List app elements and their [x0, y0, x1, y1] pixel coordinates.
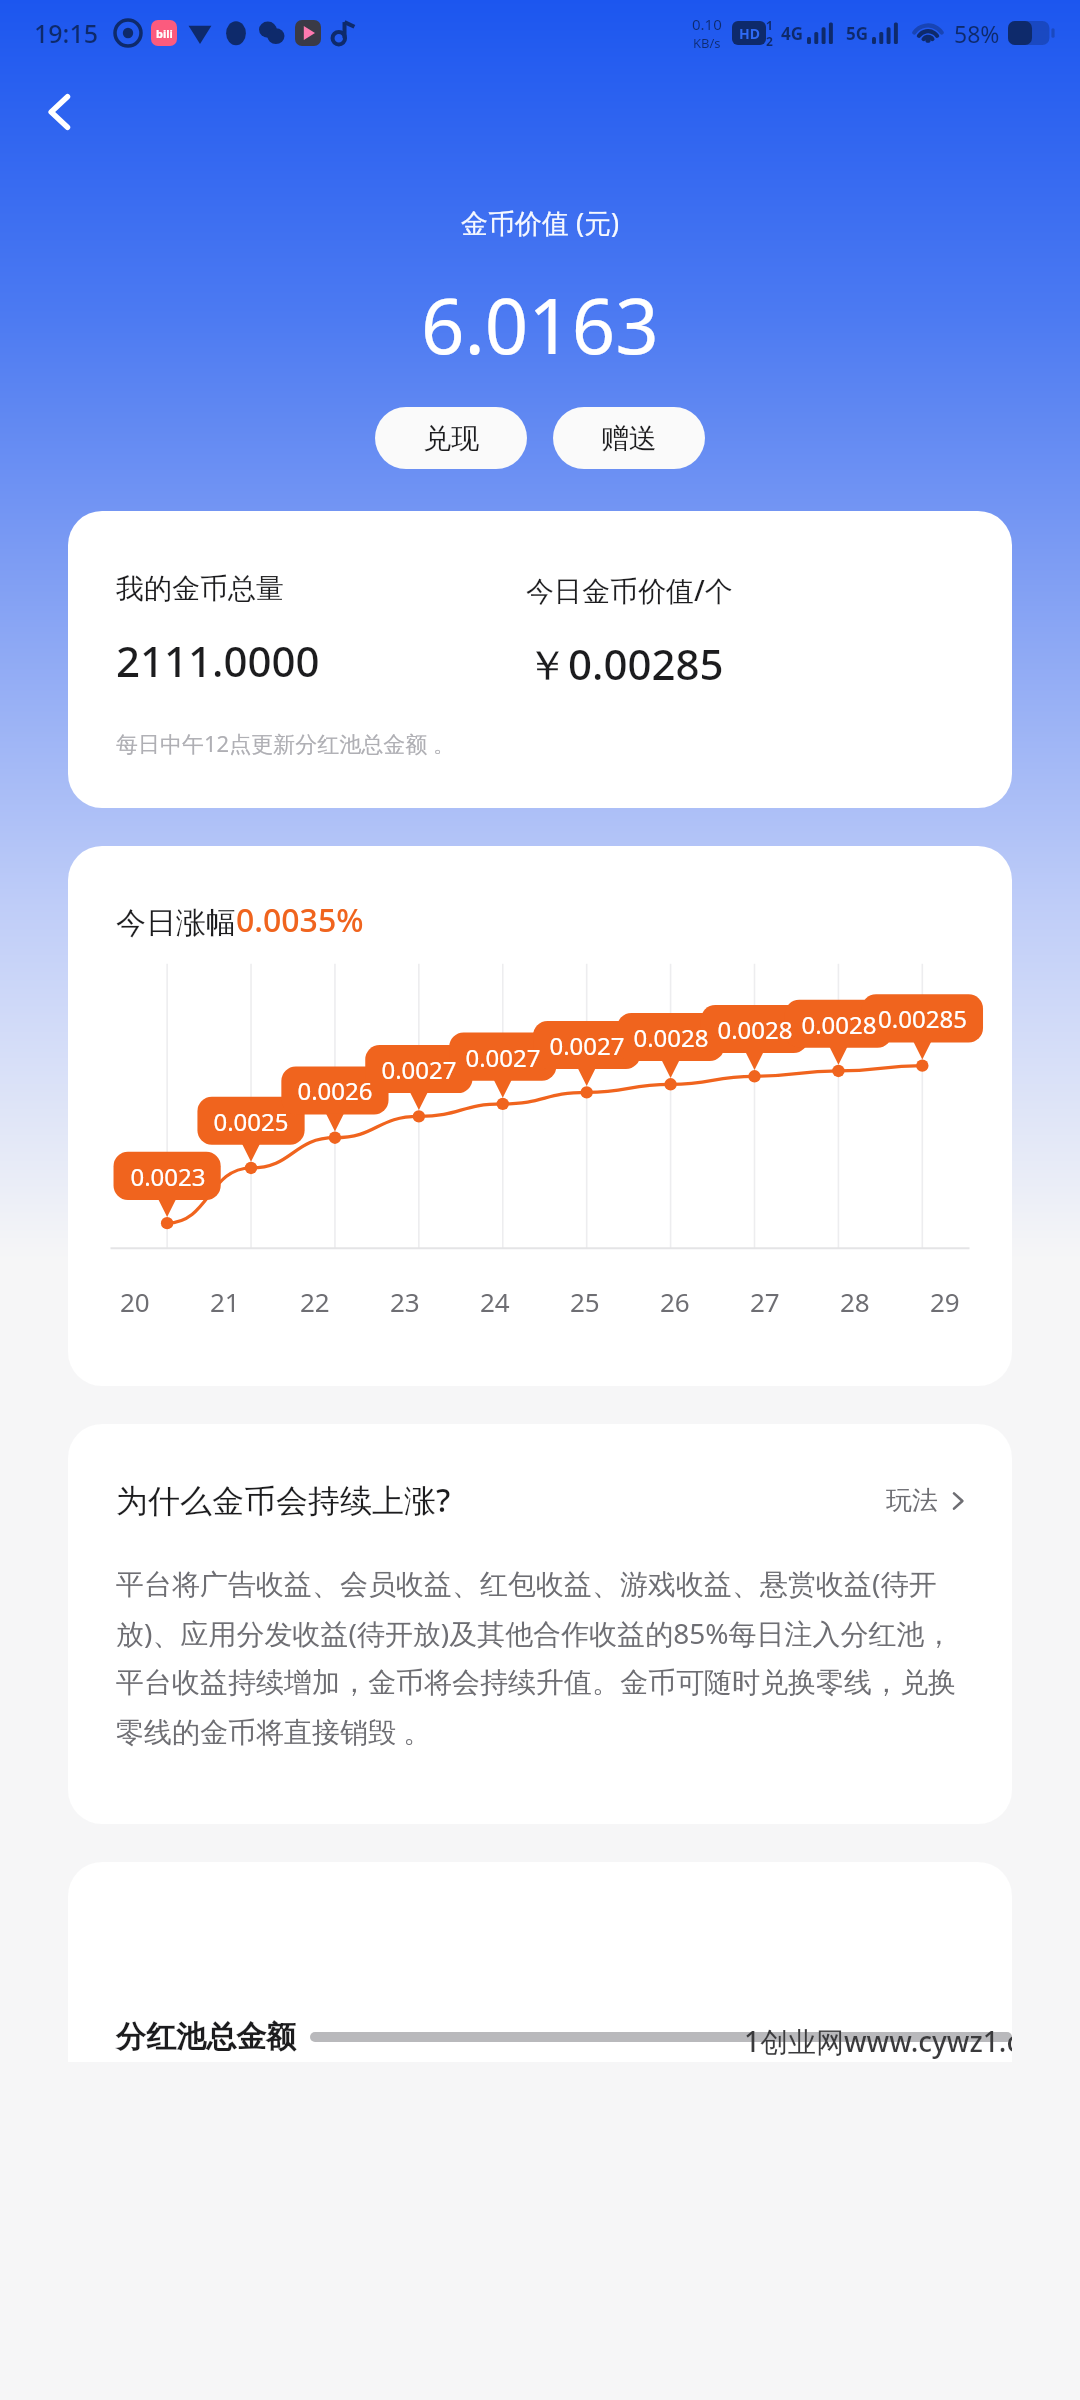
staticText: 每日中午12点更新分红池总金额 。 [116, 728, 455, 758]
staticText: 28 [840, 1284, 870, 1319]
staticText: 6.0163 [421, 273, 659, 377]
staticText: 4G [781, 22, 804, 45]
button[interactable]: 兑现 [375, 407, 527, 469]
staticText: 29 [930, 1284, 960, 1319]
staticText: 0.0025 [213, 1105, 289, 1138]
staticText: 0.0028 [633, 1021, 709, 1054]
staticText: KB/s [693, 34, 721, 52]
staticText: 0.0027 [549, 1029, 625, 1062]
staticText: 0.00285 [878, 1002, 967, 1035]
staticText: 今日涨幅 [116, 904, 236, 942]
staticText: HD [739, 24, 760, 43]
staticText: 为什么金币会持续上涨? [116, 1478, 451, 1522]
staticText: 26 [660, 1284, 690, 1319]
staticText: 23 [390, 1284, 420, 1319]
staticText: 0.0028 [801, 1008, 877, 1041]
staticText: 我的金币总量 [116, 571, 284, 606]
staticText: 0.0035% [236, 898, 364, 942]
staticText: 今日金币价值/个 [526, 571, 733, 609]
staticText: ￥0.00285 [526, 635, 724, 692]
staticText: 0.0027 [465, 1041, 541, 1074]
staticText: 58% [954, 18, 1000, 49]
staticText: 0.10 [692, 14, 722, 34]
staticText: 兑现 [423, 421, 479, 456]
staticText: 21 [210, 1284, 240, 1319]
staticText: 平台将广告收益、会员收益、红包收益、游戏收益、悬赏收益(待开放)、应用分发收益(… [116, 1564, 968, 1750]
staticText: 1 [766, 17, 773, 33]
staticText: 25 [570, 1284, 600, 1319]
staticText: 金币价值 (元) [461, 204, 620, 241]
staticText: 2111.0000 [116, 632, 320, 689]
staticText: 5G [846, 22, 869, 45]
staticText: 2 [766, 33, 773, 49]
staticText: 0.0026 [297, 1074, 373, 1107]
staticText: 27 [750, 1284, 780, 1319]
button[interactable]: Back [22, 74, 98, 150]
staticText: bili [156, 26, 173, 41]
staticText: 24 [480, 1284, 510, 1319]
staticText: 0.0027 [381, 1053, 457, 1086]
staticText: 玩法 [886, 1484, 938, 1517]
staticText: 分红池总金额 [116, 2018, 296, 2056]
staticText: 20 [120, 1284, 150, 1319]
staticText: 1创业网www.cywz1.com [744, 2022, 1012, 2060]
staticText: 22 [300, 1284, 330, 1319]
staticText: 19:15 [34, 16, 99, 50]
staticText: 赠送 [601, 421, 657, 456]
button[interactable]: 赠送 [553, 407, 705, 469]
staticText: 0.0028 [717, 1013, 793, 1046]
button[interactable]: 玩法 [886, 1484, 968, 1517]
staticText: 0.0023 [130, 1160, 206, 1193]
